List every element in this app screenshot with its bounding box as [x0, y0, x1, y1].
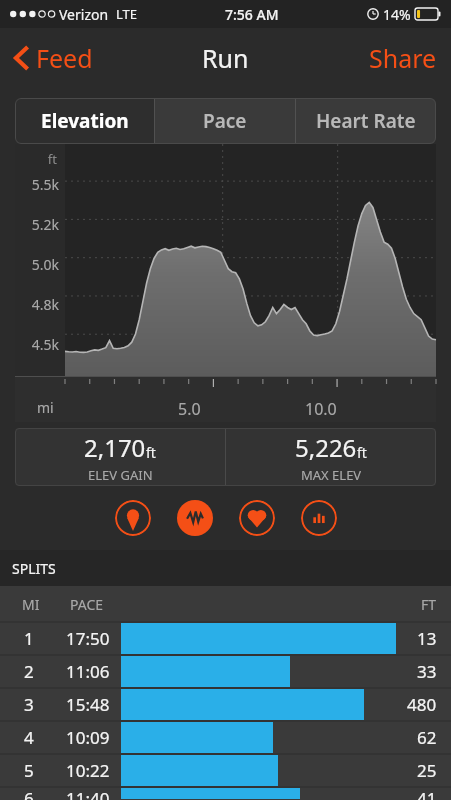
button[interactable]: Elevation	[15, 98, 154, 144]
staticText: Heart Rate	[316, 108, 416, 134]
staticText: MI	[22, 595, 40, 614]
staticText: 4	[24, 726, 34, 749]
button[interactable]: 1	[0, 622, 451, 655]
staticText: 6	[24, 787, 34, 800]
staticText: Pace	[203, 108, 247, 134]
button[interactable]: 5,226	[226, 428, 436, 486]
staticText: 2	[24, 660, 34, 683]
button[interactable]: 2	[0, 655, 451, 688]
staticText: 1	[24, 627, 34, 650]
button[interactable]: Pace	[155, 98, 295, 144]
staticText: Share	[369, 41, 437, 75]
staticText: Feed	[36, 41, 93, 75]
button[interactable]: Map	[115, 500, 151, 536]
staticText: 5.5k	[15, 175, 59, 194]
staticText: 15:48	[66, 693, 110, 716]
staticText: 5,226	[295, 431, 357, 464]
staticText: ft	[146, 443, 156, 462]
button[interactable]: Heart Rate	[296, 98, 436, 144]
staticText: 5.2k	[15, 215, 59, 234]
button[interactable]: 6	[0, 787, 451, 800]
staticText: 2,170	[84, 431, 146, 464]
button[interactable]: 2,170	[15, 428, 225, 486]
staticText: LTE	[116, 5, 138, 23]
staticText: 41	[417, 787, 437, 800]
button[interactable]: Heart Rate	[239, 500, 275, 536]
staticText: mi	[37, 398, 54, 417]
staticText: 3	[24, 693, 34, 716]
staticText: MAX ELEV	[301, 466, 362, 484]
button[interactable]: 5	[0, 754, 451, 787]
staticText: 11:06	[66, 660, 110, 683]
staticText: 4.8k	[15, 295, 59, 314]
staticText: PACE	[70, 595, 104, 614]
staticText: Run	[202, 41, 249, 75]
staticText: 10:22	[66, 759, 110, 782]
staticText: 10.0	[305, 398, 337, 420]
staticText: 480	[407, 693, 437, 716]
staticText: ELEV GAIN	[88, 466, 153, 484]
staticText: 11:40	[66, 787, 110, 800]
staticText: Elevation	[41, 108, 129, 134]
button[interactable]: Feed	[0, 35, 103, 81]
staticText: FT	[421, 595, 437, 614]
staticText: 10:09	[66, 726, 110, 749]
staticText: SPLITS	[12, 559, 56, 578]
staticText: ft	[15, 150, 57, 168]
button[interactable]: Elevation	[177, 500, 213, 536]
staticText: ft	[357, 443, 367, 462]
staticText: 62	[417, 726, 437, 749]
button[interactable]: Share	[355, 35, 451, 81]
staticText: 17:50	[66, 627, 110, 650]
staticText: 7:56 AM	[225, 5, 279, 24]
staticText: Verizon	[59, 5, 109, 24]
staticText: 25	[417, 759, 437, 782]
staticText: 5	[24, 759, 34, 782]
staticText: 5.0	[178, 398, 201, 420]
staticText: 14%	[383, 5, 411, 24]
staticText: 5.0k	[15, 255, 59, 274]
staticText: 13	[417, 627, 437, 650]
button[interactable]: 4	[0, 721, 451, 754]
button[interactable]: 3	[0, 688, 451, 721]
button[interactable]: Splits	[301, 500, 337, 536]
staticText: 33	[417, 660, 437, 683]
staticText: 4.5k	[15, 335, 59, 354]
